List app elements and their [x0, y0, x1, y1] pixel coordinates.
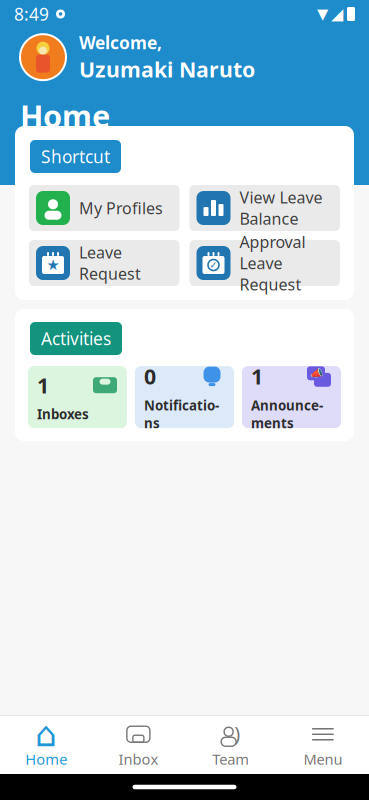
staticText: Announcements: [251, 396, 323, 432]
button[interactable]: 1: [28, 366, 127, 428]
staticText: Leave Request: [79, 242, 141, 284]
button[interactable]: 0: [135, 366, 234, 428]
staticText: Home: [25, 749, 67, 769]
button[interactable]: ⌂: [0, 715, 92, 775]
staticText: Home: [20, 95, 110, 136]
button[interactable]: ✓: [189, 240, 340, 286]
staticText: 📣: [309, 367, 322, 379]
staticText: 0: [144, 362, 156, 390]
staticText: ★: [46, 257, 59, 273]
staticText: Activities: [41, 327, 111, 350]
staticText: 1: [37, 371, 49, 399]
button[interactable]: Menu: [277, 715, 369, 775]
staticText: View Leave Balance: [239, 187, 322, 229]
staticText: Inboxes: [37, 405, 89, 423]
staticText: Approval Leave Request: [239, 231, 305, 295]
staticText: ◢: [331, 5, 343, 23]
staticText: Shortcut: [41, 145, 110, 168]
staticText: ⌂: [35, 715, 57, 754]
button[interactable]: ): [184, 715, 277, 775]
button[interactable]: My Profiles: [29, 185, 179, 231]
staticText: 1: [251, 362, 263, 390]
staticText: My Profiles: [79, 197, 163, 219]
staticText: Welcome,: [79, 31, 162, 54]
staticText: Team: [212, 749, 249, 769]
button[interactable]: Inbox: [92, 715, 184, 775]
staticText: ✓: [209, 260, 217, 270]
staticText: Uzumaki Naruto: [79, 55, 255, 83]
staticText: 8:49: [14, 2, 49, 25]
staticText: Inbox: [118, 749, 158, 769]
staticText: Notifications: [144, 396, 219, 432]
staticText: ): [234, 720, 240, 747]
button[interactable]: 1: [242, 366, 341, 428]
button[interactable]: View Leave Balance: [189, 185, 340, 231]
button[interactable]: ★: [29, 240, 179, 286]
staticText: ▼: [317, 6, 328, 22]
staticText: Menu: [303, 749, 342, 769]
